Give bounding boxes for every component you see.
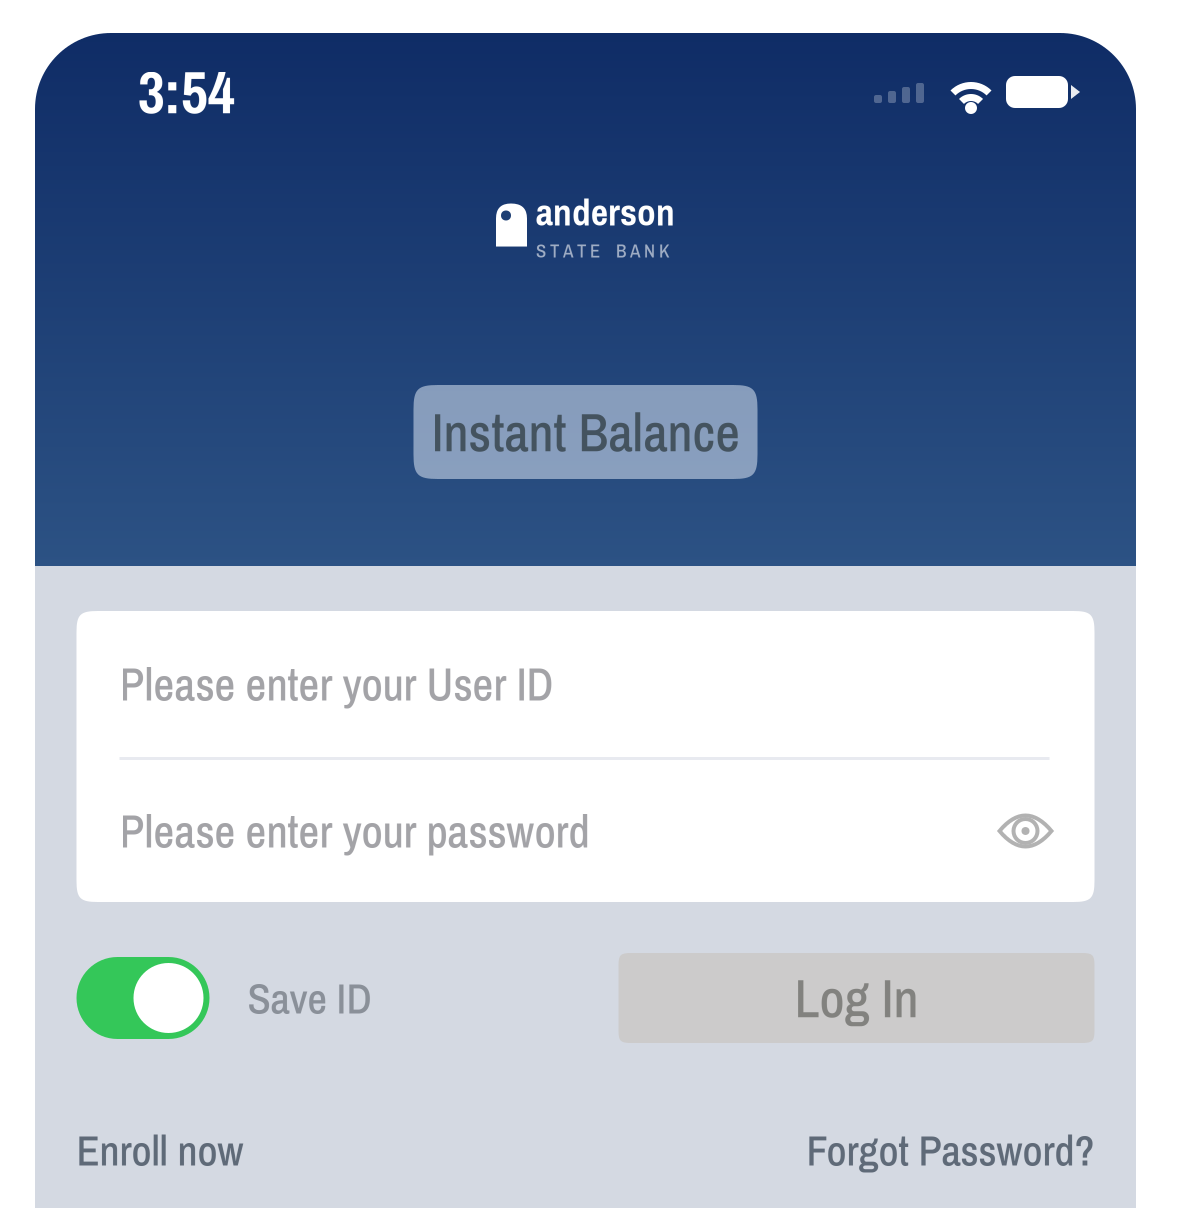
staticText: Log In — [794, 962, 918, 1034]
button[interactable]: Forgot Password? — [806, 1121, 1094, 1179]
button[interactable]: Save ID — [76, 953, 371, 1043]
button[interactable]: Instant Balance — [413, 385, 757, 479]
button[interactable]: Log In — [618, 953, 1094, 1043]
staticText: S T A T E B A N K — [536, 238, 669, 263]
staticText: 3:54 — [138, 52, 235, 131]
staticText: anderson — [536, 187, 675, 237]
staticText: Save ID — [247, 969, 371, 1027]
staticText: Enroll now — [76, 1121, 243, 1179]
staticText: Please enter your User ID — [119, 653, 553, 715]
button[interactable]: Enroll now — [76, 1121, 243, 1179]
staticText: Please enter your password — [119, 800, 589, 862]
staticText: Forgot Password? — [806, 1121, 1094, 1179]
button[interactable]: Please enter your password — [76, 760, 1094, 902]
staticText: Instant Balance — [431, 396, 739, 468]
button[interactable]: Please enter your User ID — [76, 611, 1094, 757]
